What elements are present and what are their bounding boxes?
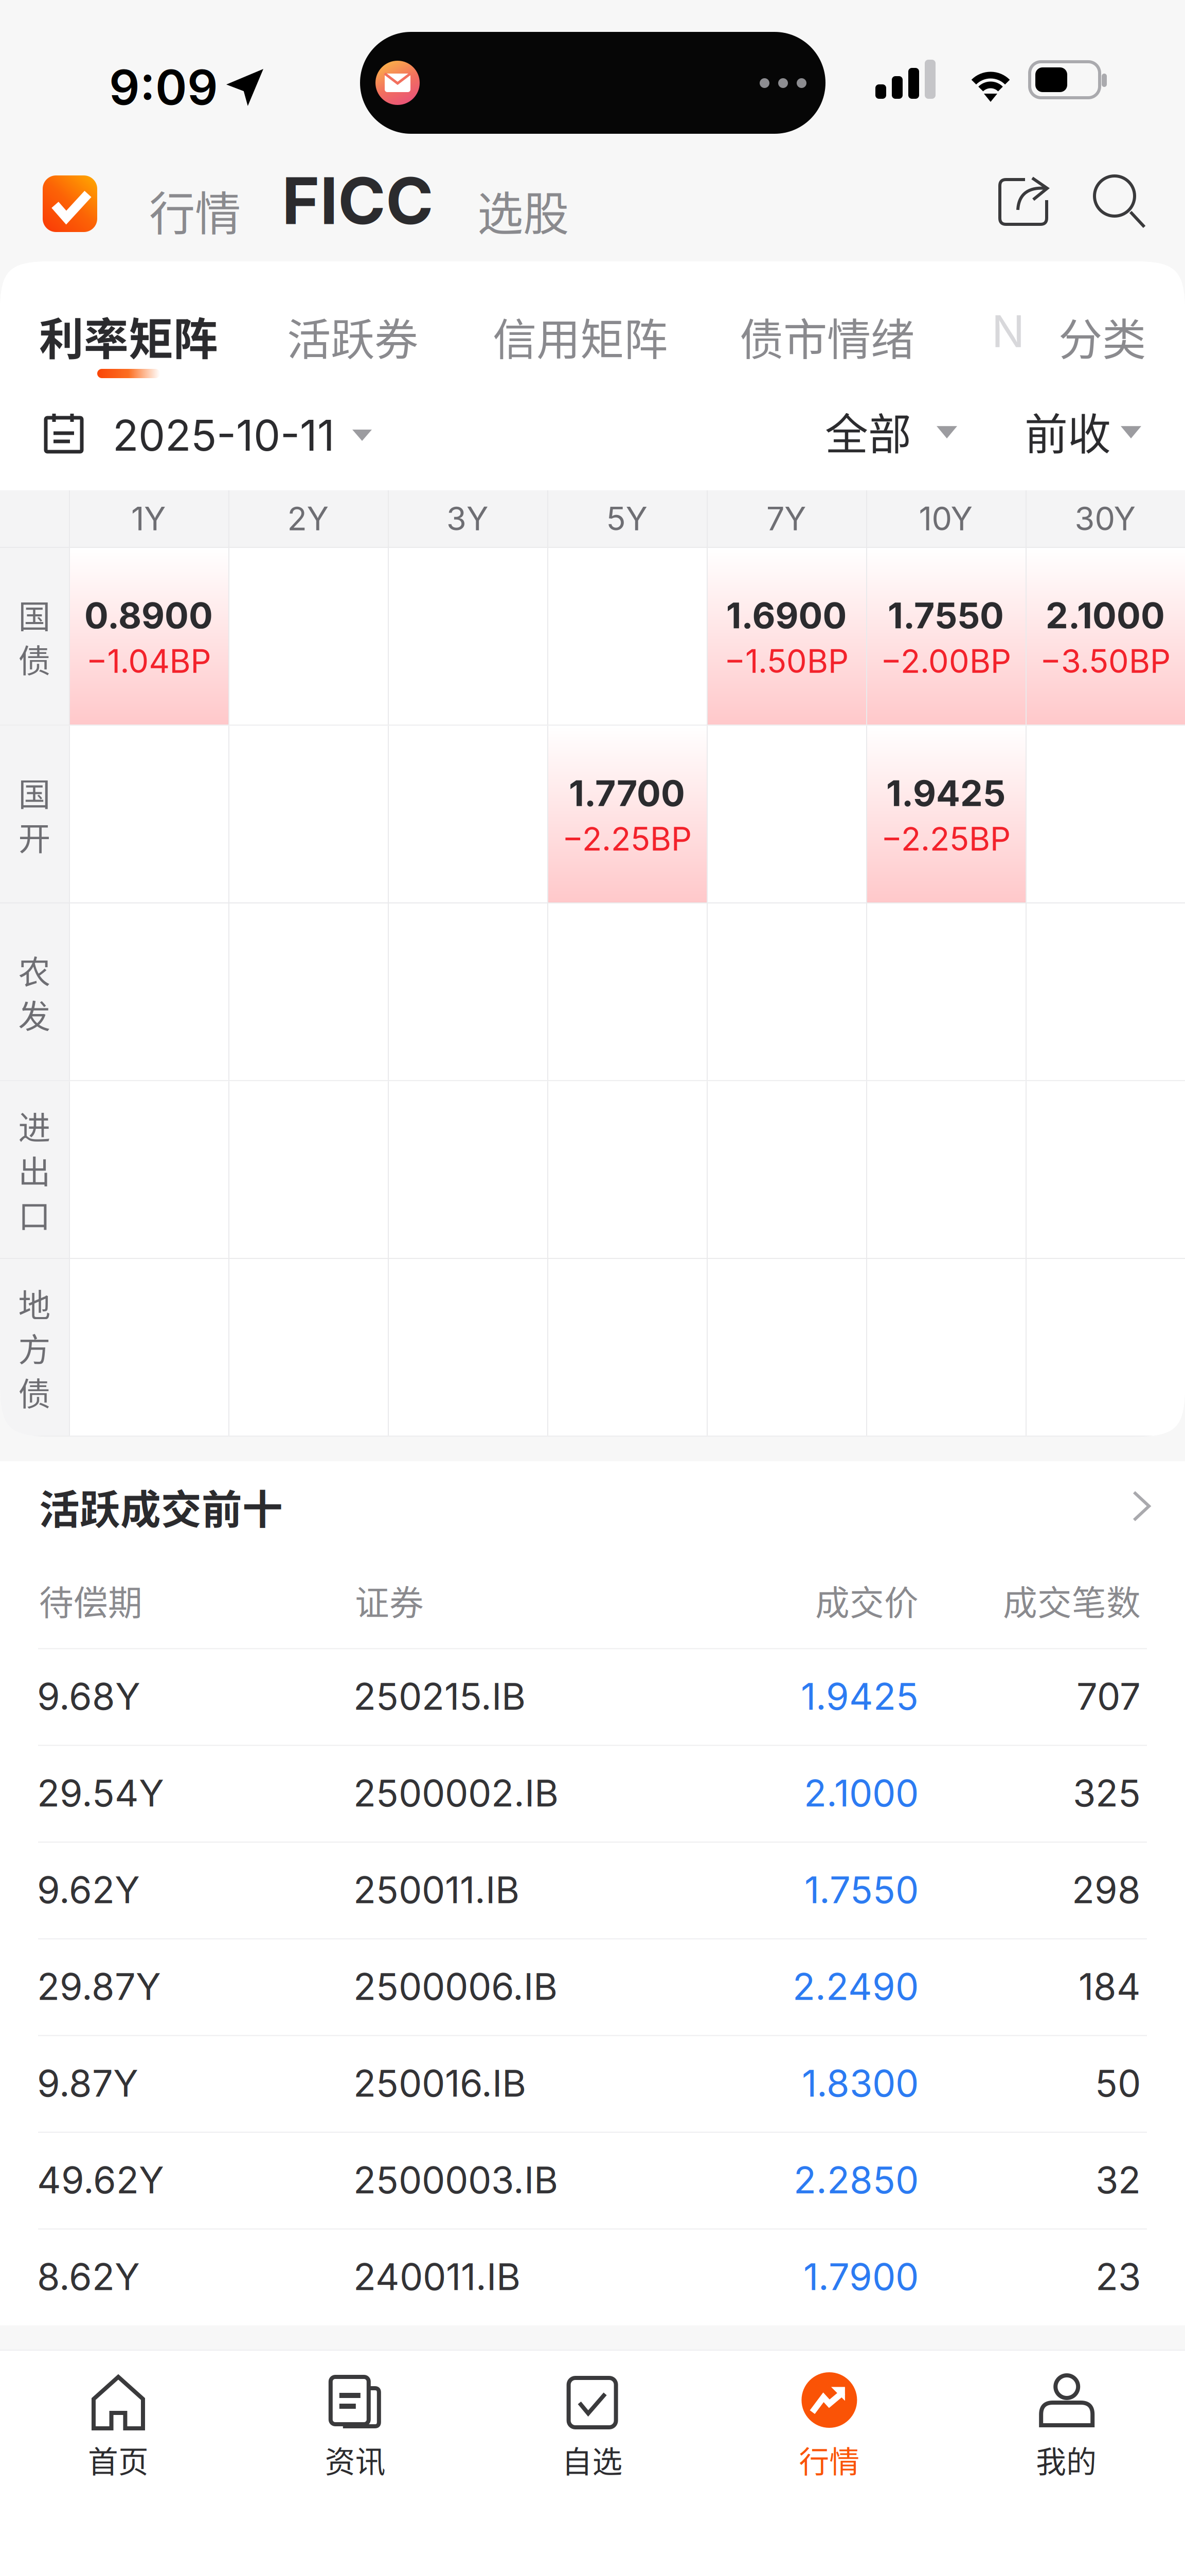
staticText: 8.62Y	[37, 2254, 140, 2299]
staticText: −2.25BP	[562, 819, 692, 858]
staticText: −1.04BP	[86, 642, 211, 681]
staticText: 口	[18, 1190, 51, 1237]
staticText: 活跃券	[287, 305, 418, 368]
staticText: 7Y	[766, 499, 806, 538]
staticText: 5Y	[606, 499, 648, 538]
staticText: 2.2850	[794, 2157, 919, 2202]
staticText: 债	[18, 1368, 51, 1415]
staticText: 2.2490	[793, 1964, 919, 2009]
staticText: 298	[1072, 1867, 1141, 1912]
staticText: 方	[18, 1324, 51, 1371]
button[interactable]: 信用矩阵	[493, 305, 668, 368]
staticText: −2.00BP	[881, 642, 1011, 681]
staticText: 自选	[562, 2438, 623, 2482]
staticText: 国	[18, 769, 51, 815]
button[interactable]: 9.68Y	[0, 1648, 1185, 1745]
button[interactable]: 我的	[948, 2351, 1185, 2505]
button[interactable]: 行情	[149, 177, 241, 244]
staticText: 国	[18, 591, 51, 637]
staticText: −1.50BP	[724, 642, 849, 681]
staticText: 1.6900	[726, 594, 847, 637]
button[interactable]: 29.54Y	[0, 1745, 1185, 1842]
staticText: 250011.IB	[353, 1867, 519, 1912]
staticText: 资讯	[325, 2438, 386, 2482]
button[interactable]: 29.87Y	[0, 1938, 1185, 2035]
button[interactable]: 自选	[474, 2351, 711, 2505]
staticText: 债	[18, 635, 51, 682]
staticText: 30Y	[1075, 499, 1136, 538]
staticText: 2.1000	[804, 1771, 919, 1815]
staticText: 2500003.IB	[353, 2157, 558, 2202]
staticText: 利率矩阵	[39, 304, 218, 368]
button[interactable]: 选股	[477, 177, 569, 244]
staticText: 250016.IB	[353, 2061, 526, 2106]
button[interactable]: 分类	[1058, 305, 1146, 368]
staticText: 2025-10-11	[113, 410, 335, 461]
staticText: 9.87Y	[37, 2061, 138, 2106]
button[interactable]: 8.62Y	[0, 2228, 1185, 2325]
staticText: 行情	[149, 177, 241, 244]
staticText: 0.8900	[84, 594, 213, 637]
staticText: 成交价	[815, 1576, 919, 1625]
staticText: 前收	[1025, 400, 1111, 462]
staticText: 1.7700	[569, 772, 685, 815]
button[interactable]: 全部	[825, 416, 979, 472]
staticText: 32	[1096, 2157, 1141, 2202]
button[interactable]: 9.62Y	[0, 1842, 1185, 1938]
button[interactable]: 资讯	[237, 2351, 474, 2505]
staticText: 29.54Y	[37, 1771, 164, 1815]
staticText: −3.50BP	[1040, 642, 1171, 681]
staticText: 1.9425	[801, 1674, 919, 1719]
staticText: 待偿期	[39, 1576, 142, 1625]
button[interactable]: 首页	[0, 2351, 237, 2505]
staticText: 9:09	[109, 58, 218, 116]
button[interactable]: 债市情绪	[740, 305, 914, 368]
staticText: FICC	[282, 162, 434, 240]
staticText: 240011.IB	[353, 2254, 520, 2299]
staticText: 1.7550	[888, 594, 1004, 637]
staticText: 证券	[355, 1576, 424, 1625]
staticText: 9.68Y	[37, 1674, 140, 1719]
button[interactable]: FICC	[282, 162, 434, 240]
staticText: −2.25BP	[881, 819, 1011, 858]
button[interactable]: 活跃成交前十	[0, 1461, 1185, 1557]
button[interactable]: 前收	[1025, 416, 1179, 472]
staticText: 选股	[477, 177, 569, 244]
button[interactable]: 9.87Y	[0, 2035, 1185, 2132]
staticText: 10Y	[919, 499, 973, 538]
staticText: 23	[1096, 2254, 1141, 2299]
button[interactable]: Search	[1094, 176, 1146, 228]
staticText: 成交笔数	[1003, 1576, 1141, 1625]
staticText: 1Y	[131, 499, 166, 538]
staticText: 债市情绪	[740, 305, 914, 368]
staticText: 地	[18, 1280, 51, 1326]
staticText: 325	[1073, 1771, 1141, 1815]
staticText: 2500002.IB	[353, 1771, 559, 1815]
staticText: 分类	[1058, 305, 1146, 368]
button[interactable]: 活跃券	[287, 305, 418, 368]
staticText: 50	[1095, 2061, 1141, 2106]
staticText: 9.62Y	[37, 1867, 140, 1912]
staticText: 29.87Y	[37, 1964, 161, 2009]
staticText: 1.7550	[804, 1867, 919, 1912]
staticText: 行情	[799, 2438, 860, 2482]
staticText: 首页	[88, 2438, 149, 2482]
button[interactable]: 2025-10-11	[43, 421, 331, 472]
staticText: 2.1000	[1046, 594, 1165, 637]
staticText: 信用矩阵	[493, 305, 668, 368]
button[interactable]: Share	[998, 177, 1050, 226]
staticText: 活跃成交前十	[39, 1477, 283, 1536]
staticText: 3Y	[446, 499, 489, 538]
button[interactable]: 利率矩阵	[39, 304, 218, 368]
button[interactable]: App icon	[43, 175, 97, 232]
staticText: N	[992, 305, 1025, 358]
staticText: 1.7900	[803, 2254, 919, 2299]
staticText: 我的	[1036, 2438, 1097, 2482]
staticText: 出	[18, 1146, 51, 1193]
staticText: 全部	[825, 400, 911, 462]
staticText: 2Y	[287, 499, 329, 538]
staticText: 2500006.IB	[353, 1964, 558, 2009]
staticText: 进	[18, 1102, 51, 1149]
button[interactable]: 行情	[711, 2351, 948, 2505]
button[interactable]: 49.62Y	[0, 2132, 1185, 2228]
